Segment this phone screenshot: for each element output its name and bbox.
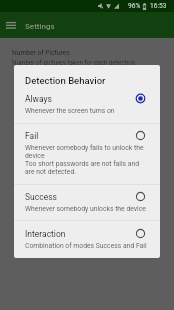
staticText: Number of Pictures — [12, 49, 70, 57]
staticText: Always — [25, 94, 52, 104]
button[interactable]: Always — [14, 94, 160, 115]
button[interactable]: Fail — [14, 131, 160, 176]
staticText: Whenever somebody fails to unlock the de… — [25, 144, 144, 176]
button[interactable]: Open navigation menu — [0, 14, 22, 36]
button[interactable]: Interaction — [14, 229, 160, 250]
staticText: Number of pictures taken for each detect… — [12, 59, 136, 66]
staticText: 16:53 — [150, 2, 167, 10]
staticText: Detection Behavior — [25, 75, 106, 86]
button[interactable]: Success — [14, 192, 160, 213]
staticText: Whenever somebody unlocks the device — [25, 205, 146, 213]
staticText: Fail — [25, 131, 39, 141]
staticText: 96% — [128, 2, 141, 10]
staticText: Whenever the screen turns on — [25, 107, 115, 115]
staticText: Success — [25, 192, 57, 202]
staticText: Combination of modes Success and Fail — [25, 242, 147, 250]
staticText: Interaction — [25, 229, 66, 239]
staticText: Settings — [25, 22, 55, 31]
